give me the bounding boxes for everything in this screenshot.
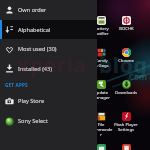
staticText: Play Store <box>18 97 45 105</box>
button[interactable]: Own order <box>0 0 97 20</box>
button[interactable]: File Commander <box>89 112 113 137</box>
staticText: Battery notifier <box>94 26 109 36</box>
staticText: Alphabetical <box>18 26 51 34</box>
staticText: Candy & Gags <box>94 58 109 68</box>
staticText: Downloads <box>115 90 137 96</box>
button[interactable]: Play Store <box>0 91 97 111</box>
button[interactable]: Flash Player Settings <box>114 112 138 132</box>
staticText: .Com <box>127 71 147 82</box>
button[interactable]: Sony Select <box>0 111 97 131</box>
button[interactable]: Installed (43) <box>0 59 97 78</box>
staticText: Own order <box>18 6 47 14</box>
button[interactable]: BOCHK <box>114 16 138 32</box>
button[interactable]: Chrome <box>114 48 138 64</box>
button[interactable]: Downloads <box>114 80 138 96</box>
button[interactable]: Candy & Gags <box>89 48 113 68</box>
staticText: GET APPS <box>5 82 28 88</box>
button[interactable]: Update manager <box>89 80 113 100</box>
staticText: Sony Select <box>18 117 48 125</box>
button[interactable]: Most used (30) <box>0 39 97 59</box>
staticText: xperia <box>17 51 87 80</box>
staticText: Flash Player Settings <box>114 122 138 132</box>
staticText: File Commander <box>89 122 113 137</box>
staticText: blog <box>99 51 148 80</box>
staticText: BOCHK <box>119 26 134 32</box>
staticText: Most used (30) <box>18 45 57 53</box>
staticText: Update manager <box>92 90 110 100</box>
button[interactable] <box>89 144 113 150</box>
button[interactable]: Alphabetical <box>0 20 97 39</box>
staticText: Installed (43) <box>18 65 52 73</box>
staticText: Chrome <box>118 58 134 64</box>
button[interactable]: Battery notifier <box>89 16 113 36</box>
button[interactable] <box>114 144 138 150</box>
